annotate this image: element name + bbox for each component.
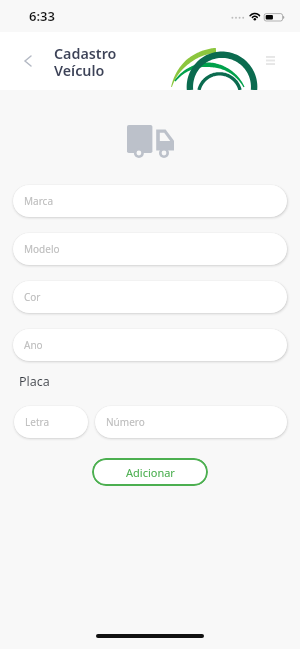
staticText: Adicionar — [126, 465, 175, 480]
staticText: Letra — [25, 415, 50, 429]
button[interactable]: Back — [14, 47, 41, 74]
button[interactable]: Marca — [13, 185, 287, 217]
staticText: Placa — [19, 373, 50, 390]
button[interactable]: Letra — [14, 406, 88, 438]
staticText: Cor — [24, 290, 41, 304]
button[interactable]: Número — [95, 406, 287, 438]
button[interactable]: Cor — [13, 281, 287, 313]
button[interactable]: Menu — [258, 48, 283, 73]
button[interactable]: Adicionar — [92, 458, 208, 486]
staticText: Marca — [24, 194, 54, 208]
staticText: Ano — [24, 338, 43, 352]
button[interactable]: Modelo — [13, 233, 287, 265]
staticText: Cadastro Veículo — [54, 44, 117, 81]
button[interactable]: Ano — [13, 329, 287, 361]
staticText: Número — [106, 415, 145, 429]
staticText: 6:33 — [29, 7, 55, 25]
staticText: Modelo — [24, 242, 60, 256]
